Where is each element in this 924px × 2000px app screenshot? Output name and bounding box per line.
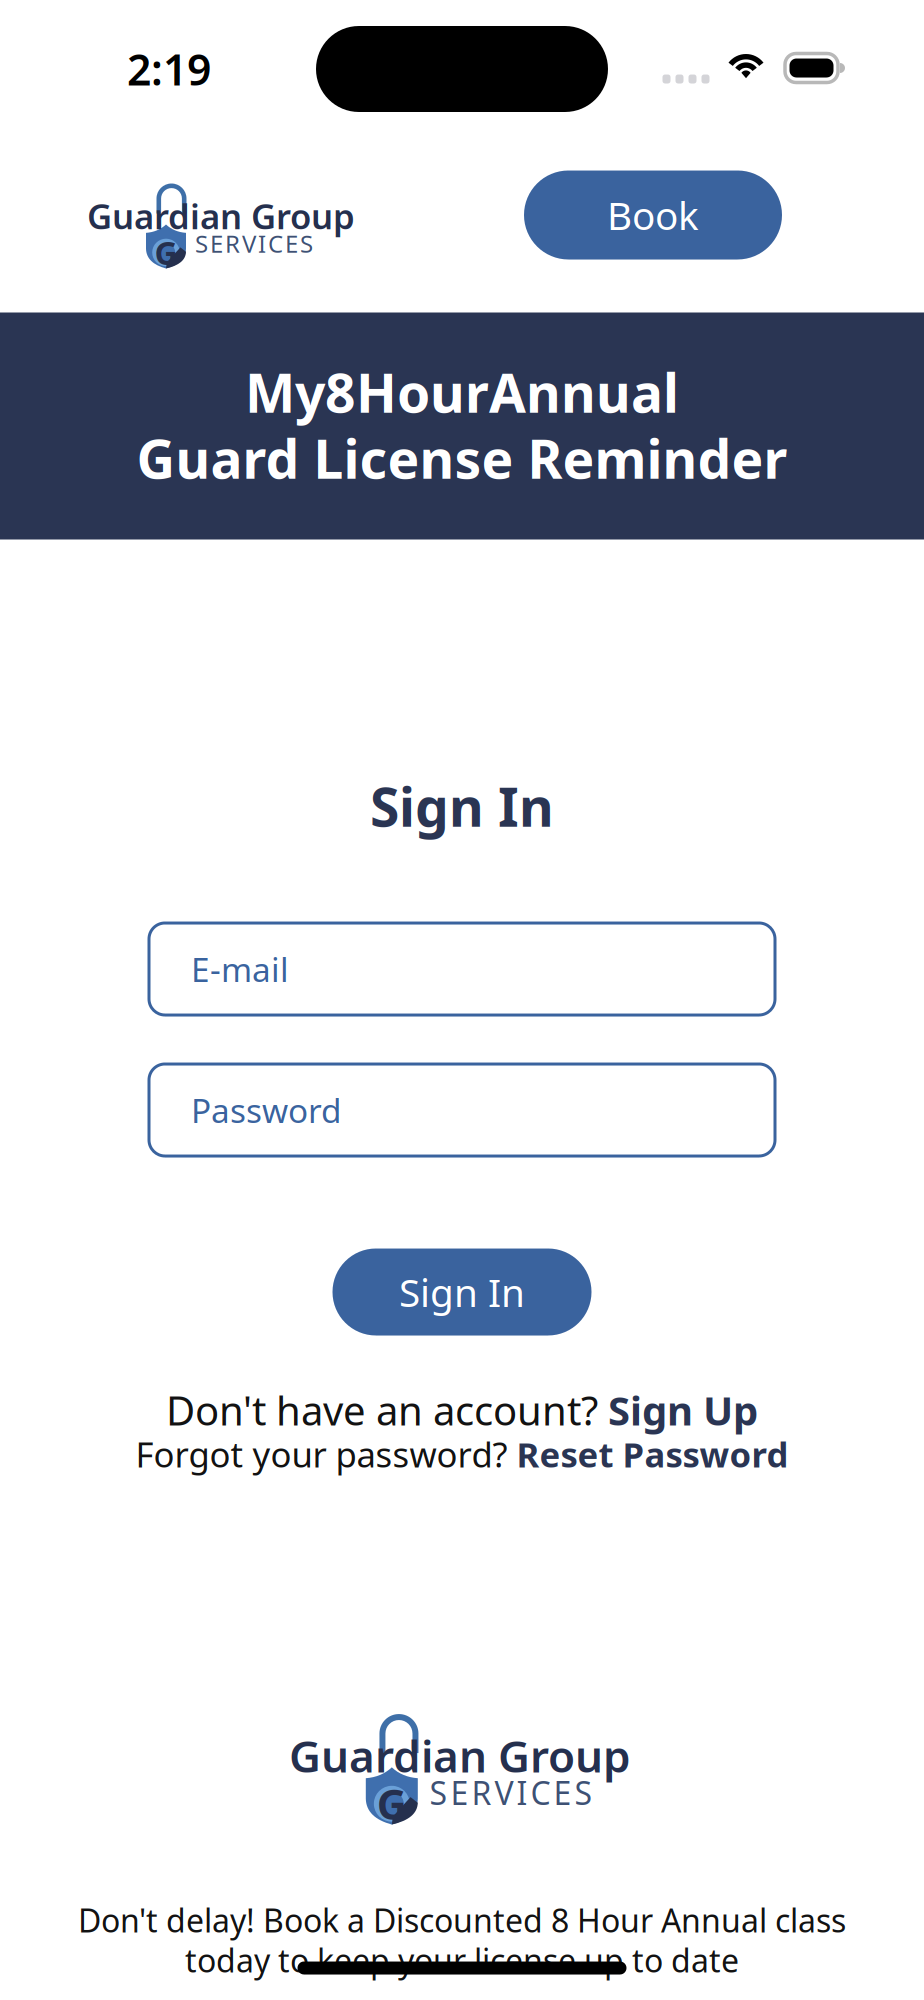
button[interactable]: Reset Password	[516, 1431, 788, 1477]
button[interactable]: Book	[524, 170, 782, 259]
staticText: today to keep your license up to date	[185, 1939, 739, 1981]
staticText: G	[377, 1776, 407, 1831]
staticText: S E R V I C E S	[429, 1771, 592, 1814]
staticText: Guardian Group	[289, 1726, 631, 1785]
staticText: 2:19	[127, 41, 211, 97]
staticText: Don't delay! Book a Discounted 8 Hour An…	[78, 1899, 846, 1941]
button[interactable]: Sign In	[332, 1248, 591, 1335]
staticText: My8HourAnnual	[245, 357, 679, 427]
staticText: E-mail	[191, 947, 289, 991]
staticText: Password	[191, 1088, 342, 1132]
staticText: Sign Up	[608, 1383, 758, 1436]
staticText: Sign In	[399, 1266, 525, 1318]
button[interactable]: E-mail	[149, 923, 775, 1015]
staticText: Don't have an account?	[166, 1383, 608, 1436]
button[interactable]: Sign Up	[608, 1383, 758, 1436]
staticText: Book	[607, 189, 699, 241]
staticText: Reset Password	[516, 1431, 788, 1477]
staticText: G	[154, 231, 177, 274]
staticText: S E R V I C E S	[195, 227, 313, 259]
staticText: Forgot your password?	[135, 1431, 516, 1477]
staticText: Guardian Group	[87, 193, 355, 239]
staticText: Sign In	[370, 771, 554, 841]
staticText: Guard License Reminder	[136, 423, 787, 493]
button[interactable]: Guardian Group Services home	[88, 183, 354, 266]
button[interactable]: Password	[149, 1064, 775, 1156]
